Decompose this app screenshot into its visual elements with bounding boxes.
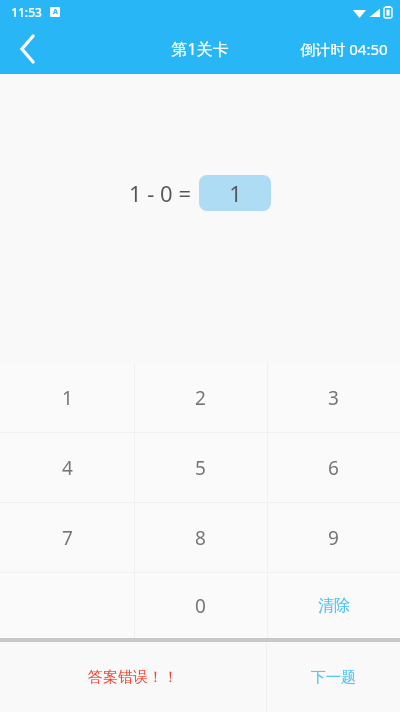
staticText: 答案错误！！: [88, 668, 178, 687]
button[interactable]: Back: [0, 24, 56, 74]
button[interactable]: 5: [134, 433, 267, 502]
staticText: 5: [195, 455, 206, 481]
button[interactable]: 7: [0, 503, 134, 572]
button[interactable]: 3: [267, 363, 400, 432]
staticText: 倒计时 04:50: [300, 39, 388, 59]
button[interactable]: 1: [0, 363, 134, 432]
button[interactable]: 答案错误！！: [0, 642, 266, 712]
staticText: 第1关卡: [171, 38, 229, 60]
staticText: 4: [62, 455, 73, 481]
staticText: 7: [62, 525, 73, 551]
button[interactable]: 清除: [267, 573, 400, 638]
button[interactable]: 8: [134, 503, 267, 572]
staticText: 清除: [318, 596, 350, 616]
button[interactable]: 4: [0, 433, 134, 502]
staticText: 1: [229, 178, 242, 208]
button[interactable]: 6: [267, 433, 400, 502]
button[interactable]: 2: [134, 363, 267, 432]
staticText: 6: [328, 455, 339, 481]
button[interactable]: 1: [199, 175, 271, 211]
staticText: 2: [195, 385, 206, 411]
staticText: 1: [62, 385, 73, 411]
button[interactable]: 下一题: [267, 642, 400, 712]
staticText: 1 - 0 =: [129, 178, 191, 208]
button[interactable]: 9: [267, 503, 400, 572]
staticText: 下一题: [311, 668, 356, 687]
staticText: 0: [195, 593, 206, 619]
staticText: 11:53: [11, 4, 42, 20]
staticText: A: [53, 7, 58, 17]
button[interactable]: 0: [134, 573, 267, 638]
staticText: 9: [328, 525, 339, 551]
staticText: 3: [328, 385, 339, 411]
staticText: 8: [195, 525, 206, 551]
